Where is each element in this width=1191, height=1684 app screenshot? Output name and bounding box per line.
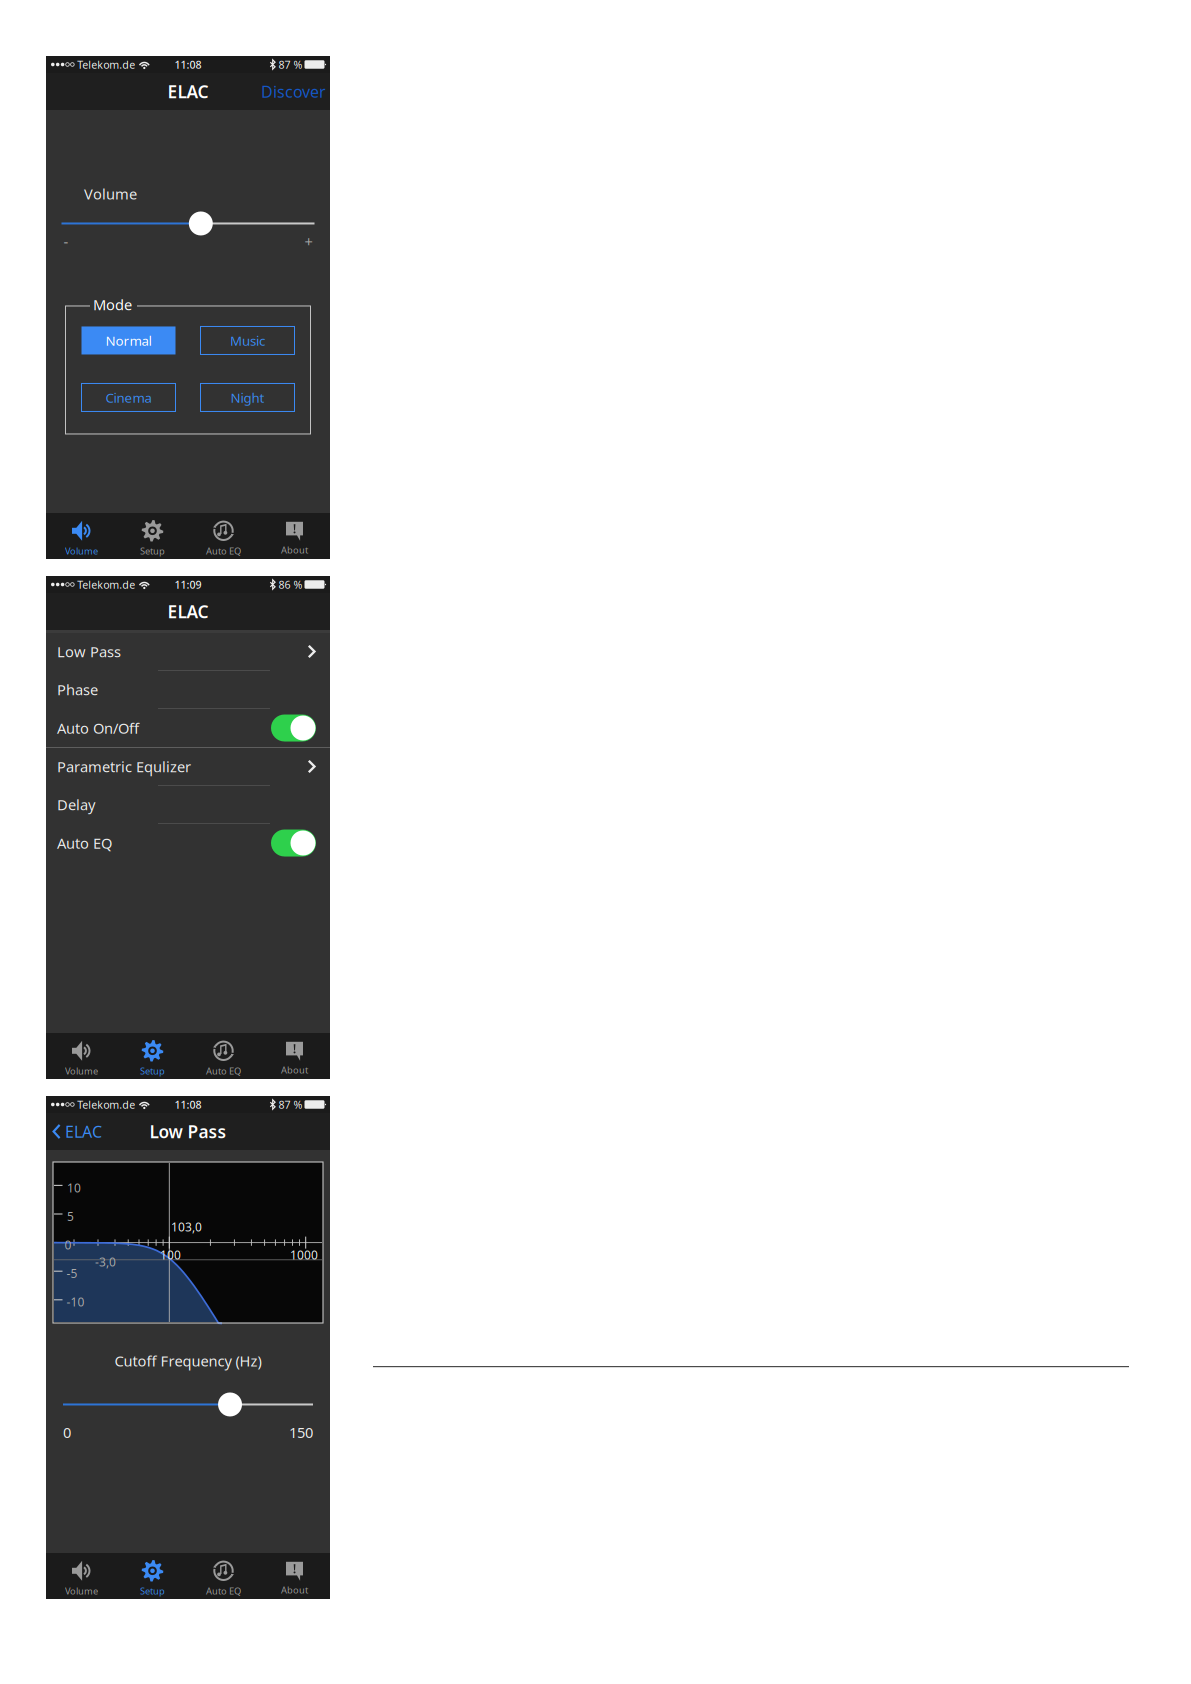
button[interactable]: Auto On/Off xyxy=(46,709,330,747)
staticText: ELAC xyxy=(167,600,208,623)
staticText: Volume xyxy=(65,545,98,557)
staticText: Delay xyxy=(57,795,95,814)
staticText: 103,0 xyxy=(171,1219,202,1235)
staticText: Cutoff Frequency (Hz) xyxy=(114,1351,261,1370)
staticText: 87 % xyxy=(278,57,302,72)
staticText: Auto EQ xyxy=(206,1065,241,1077)
button[interactable]: Music xyxy=(200,326,294,354)
staticText: 0 xyxy=(64,1237,71,1253)
staticText: Mode xyxy=(93,295,132,314)
staticText: Telekom.de xyxy=(77,577,135,592)
staticText: 11:08 xyxy=(174,57,201,72)
staticText: Parametric Equlizer xyxy=(57,757,191,776)
button[interactable]: Volume xyxy=(46,1033,117,1079)
button[interactable]: Setup xyxy=(117,1033,188,1079)
button[interactable]: Auto EQ xyxy=(188,1553,259,1599)
staticText: 5 xyxy=(67,1208,74,1224)
staticText: Cinema xyxy=(105,389,151,406)
staticText: Auto EQ xyxy=(57,833,112,853)
staticText: 10 xyxy=(67,1180,81,1196)
staticText: 100 xyxy=(160,1247,181,1263)
button[interactable]: Cutoff frequency xyxy=(63,1392,313,1416)
button[interactable]: Low Pass xyxy=(46,633,330,671)
button[interactable]: Parametric Equlizer xyxy=(46,748,330,786)
staticText: 86 % xyxy=(278,577,302,592)
staticText: 1000 xyxy=(290,1247,318,1263)
staticText: Volume xyxy=(65,1585,98,1597)
staticText: Volume xyxy=(84,184,137,203)
staticText: Setup xyxy=(140,1585,165,1597)
staticText: About xyxy=(281,1064,308,1076)
staticText: + xyxy=(304,232,312,251)
staticText: Phase xyxy=(57,680,98,699)
staticText: Normal xyxy=(105,332,151,349)
button[interactable]: About xyxy=(259,1033,330,1079)
button[interactable]: Setup xyxy=(117,513,188,559)
staticText: 87 % xyxy=(278,1097,302,1112)
button[interactable]: Auto EQ xyxy=(46,824,330,862)
staticText: Night xyxy=(230,389,264,406)
staticText: About xyxy=(281,544,308,556)
button[interactable]: Delay xyxy=(46,786,330,824)
button[interactable]: Increase volume xyxy=(304,232,314,251)
staticText: 11:08 xyxy=(174,1097,201,1112)
staticText: Telekom.de xyxy=(77,1097,135,1112)
staticText: Low Pass xyxy=(57,642,121,661)
staticText: 150 xyxy=(289,1422,313,1442)
staticText: Setup xyxy=(140,1065,165,1077)
staticText: -3,0 xyxy=(95,1254,116,1270)
staticText: 11:09 xyxy=(174,577,201,592)
staticText: Telekom.de xyxy=(77,57,135,72)
staticText: Discover xyxy=(261,81,326,102)
button[interactable]: About xyxy=(259,513,330,559)
staticText: Low Pass xyxy=(149,1120,226,1143)
staticText: Auto EQ xyxy=(206,1585,241,1597)
button[interactable]: Discover xyxy=(261,81,330,102)
staticText: -10 xyxy=(66,1294,84,1310)
button[interactable]: Night xyxy=(200,383,294,411)
button[interactable]: ELAC xyxy=(46,1121,102,1142)
staticText: - xyxy=(63,232,68,251)
button[interactable]: Volume xyxy=(61,211,314,235)
button[interactable]: About xyxy=(259,1553,330,1599)
button[interactable]: Volume xyxy=(46,513,117,559)
button[interactable]: Auto EQ xyxy=(188,1033,259,1079)
button[interactable]: Auto EQ xyxy=(188,513,259,559)
button[interactable]: Decrease volume xyxy=(61,232,68,251)
button[interactable]: Setup xyxy=(117,1553,188,1599)
staticText: ELAC xyxy=(167,80,208,103)
button[interactable]: Normal xyxy=(81,326,175,354)
staticText: ELAC xyxy=(65,1121,102,1142)
staticText: 0 xyxy=(63,1422,71,1442)
staticText: Music xyxy=(230,332,265,349)
button[interactable]: Volume xyxy=(46,1553,117,1599)
staticText: Auto EQ xyxy=(206,545,241,557)
staticText: -5 xyxy=(66,1265,77,1281)
staticText: About xyxy=(281,1584,308,1596)
staticText: Volume xyxy=(65,1065,98,1077)
button[interactable]: Cinema xyxy=(81,383,175,411)
staticText: Setup xyxy=(140,545,165,557)
button[interactable]: Phase xyxy=(46,671,330,709)
staticText: Auto On/Off xyxy=(57,718,139,738)
